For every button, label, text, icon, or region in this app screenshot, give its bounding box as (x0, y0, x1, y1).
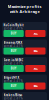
staticText: BUY (11, 49, 17, 53)
staticText: with Arbitrage (9, 9, 39, 14)
staticText: Bitget/HTX (3, 76, 19, 79)
staticText: spread 2.41% (3, 97, 22, 100)
staticText: SELL (33, 67, 37, 70)
button[interactable]: Kraken/Bitso (2, 92, 47, 100)
staticText: BUY (11, 84, 17, 88)
staticText: SELL (33, 49, 37, 53)
button[interactable]: Binance/OKX (2, 39, 47, 54)
staticText: SELL (33, 32, 37, 35)
staticText: spread 2.41% (3, 27, 22, 30)
staticText: spread 2.41% (3, 44, 22, 48)
button[interactable]: KuCoin/Bybit (2, 22, 47, 37)
staticText: Binance/OKX (3, 41, 22, 44)
staticText: Gate.io/MEXC (3, 58, 23, 62)
staticText: BUY (11, 67, 17, 70)
button[interactable]: Bitget/HTX (2, 74, 47, 89)
button[interactable]: Gate.io/MEXC (2, 57, 47, 72)
staticText: BUY (11, 32, 17, 35)
staticText: Maximize profits (7, 4, 41, 9)
staticText: spread 2.41% (3, 62, 22, 65)
staticText: SELL (33, 84, 37, 88)
staticText: spread 2.41% (3, 79, 22, 83)
staticText: Kraken/Bitso (3, 93, 22, 97)
staticText: KuCoin/Bybit (3, 23, 23, 27)
